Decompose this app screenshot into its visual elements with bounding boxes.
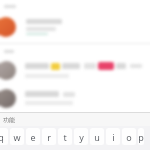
staticText: q [0, 131, 4, 143]
button[interactable]: t [58, 128, 72, 145]
button[interactable]: y [74, 128, 88, 145]
button[interactable]: o [122, 128, 136, 145]
staticText: e [30, 131, 36, 143]
button[interactable]: u [90, 128, 104, 145]
staticText: t [63, 131, 67, 143]
staticText: u [94, 131, 100, 143]
button[interactable]: i [106, 128, 120, 145]
button[interactable]: p [138, 128, 144, 145]
staticText: y [79, 131, 84, 143]
button[interactable]: 功能 [2, 115, 16, 125]
button[interactable] [0, 13, 150, 40]
button[interactable] [0, 85, 150, 111]
button[interactable] [0, 57, 150, 83]
staticText: w [13, 131, 21, 143]
staticText: r [47, 131, 51, 143]
staticText: p [138, 131, 144, 143]
button[interactable]: q [0, 128, 8, 145]
staticText: 功能 [3, 116, 15, 124]
staticText: o [126, 131, 132, 143]
button[interactable]: r [42, 128, 56, 145]
button[interactable]: w [10, 128, 24, 145]
staticText: i [112, 131, 115, 143]
button[interactable]: e [26, 128, 40, 145]
